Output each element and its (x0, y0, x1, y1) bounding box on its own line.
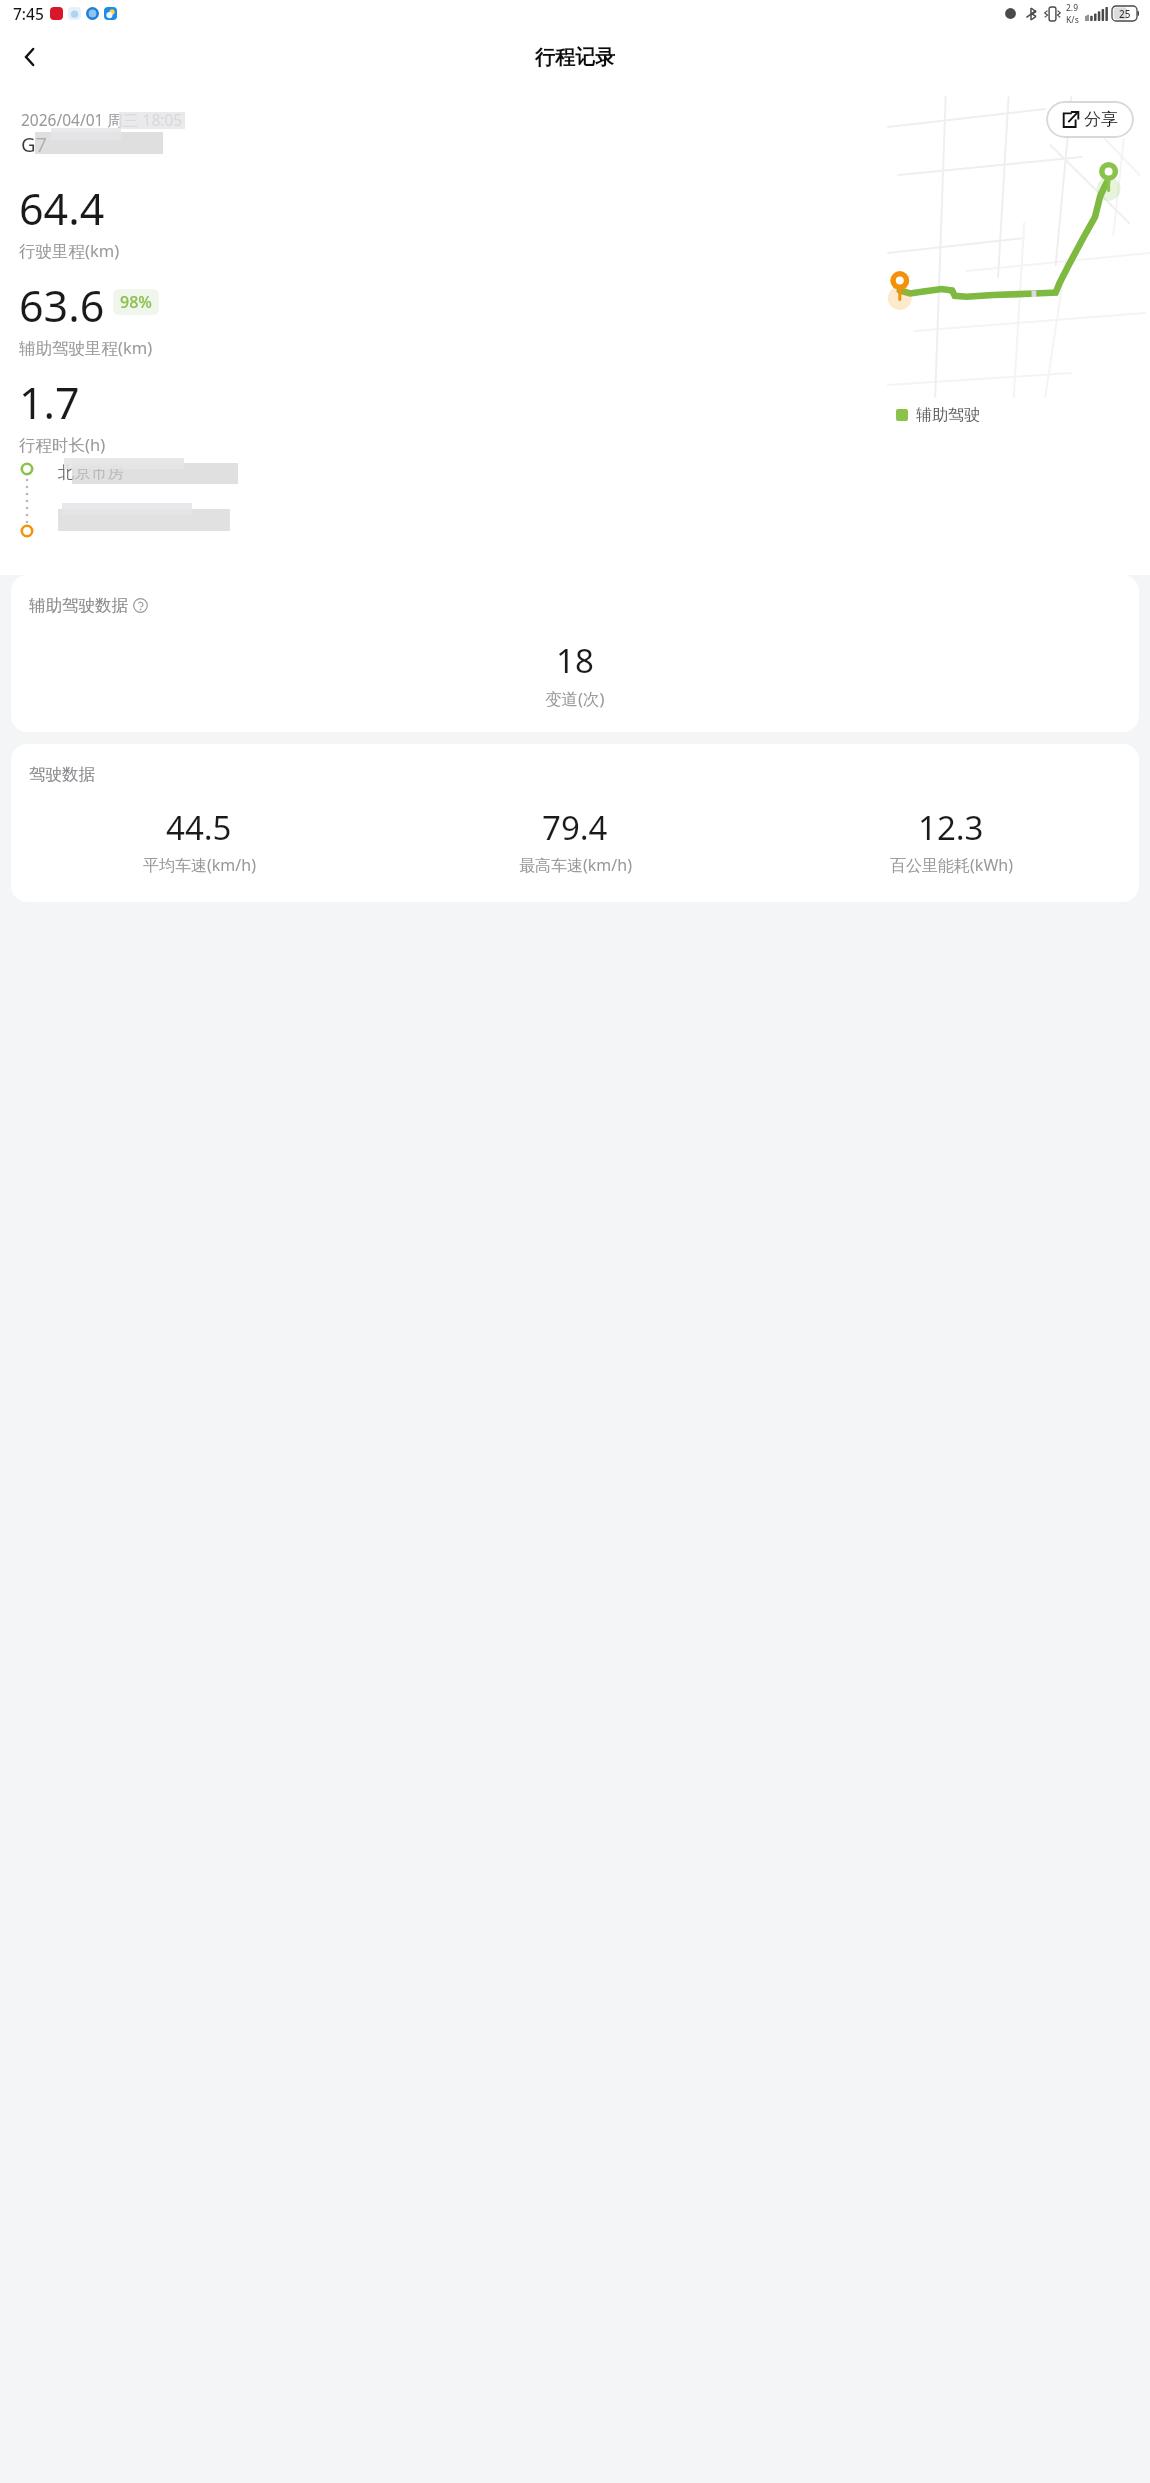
staticText: 驾驶数据 (29, 764, 95, 785)
staticText: 辅助驾驶数据 (29, 595, 128, 616)
button[interactable]: 辅助驾驶数据 (11, 575, 1139, 732)
staticText: 辅助驾驶 (916, 405, 980, 425)
staticText: 2.9 (1066, 2, 1079, 14)
staticText: 辅助驾驶里程(km) (19, 336, 153, 359)
staticText: 98% (120, 291, 152, 313)
staticText: 百公里能耗(kWh) (890, 854, 1013, 876)
staticText: 64.4 (19, 179, 105, 238)
staticText: 行程时长(h) (19, 433, 106, 456)
staticText: K/s (1066, 14, 1079, 26)
staticText: 平均车速(km/h) (143, 854, 256, 876)
staticText: 2026/04/01 周三 18:05 (21, 109, 183, 130)
staticText: 44.5 (166, 805, 232, 850)
staticText: 1.7 (19, 373, 80, 432)
staticText: 25 (1119, 7, 1131, 21)
staticText: 行驶里程(km) (19, 239, 120, 262)
button[interactable]: 分享 (1046, 101, 1134, 138)
staticText: 变道(次) (545, 687, 605, 710)
staticText: G7 (21, 131, 47, 158)
staticText: 63.6 (19, 276, 105, 335)
staticText: 分享 (1084, 109, 1118, 130)
button[interactable]: Back (6, 33, 54, 81)
staticText: 12.3 (918, 805, 984, 850)
staticText: 7:45 (13, 3, 44, 24)
button[interactable]: 驾驶数据 (11, 744, 1139, 902)
staticText: 最高车速(km/h) (519, 854, 632, 876)
staticText: 行程记录 (535, 45, 615, 70)
staticText: 18 (556, 638, 594, 683)
staticText: 北京市房 (58, 462, 124, 483)
staticText: 79.4 (542, 805, 608, 850)
